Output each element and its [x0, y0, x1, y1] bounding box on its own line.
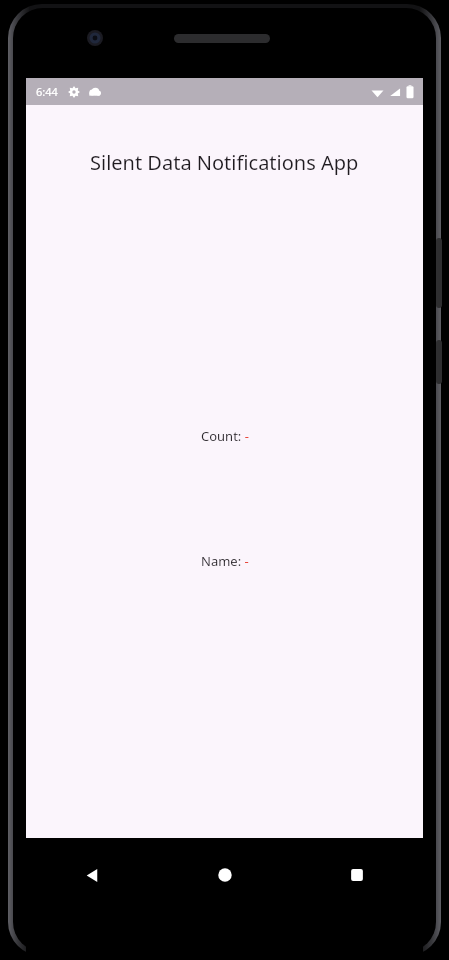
staticText: Silent Data Notifications App: [90, 149, 359, 176]
button[interactable]: Back: [26, 852, 159, 898]
button[interactable]: Home: [159, 852, 291, 898]
button[interactable]: Recent apps: [291, 852, 423, 898]
staticText: Count: -: [201, 427, 249, 445]
staticText: Name: -: [201, 552, 249, 570]
staticText: 6:44: [36, 84, 58, 99]
